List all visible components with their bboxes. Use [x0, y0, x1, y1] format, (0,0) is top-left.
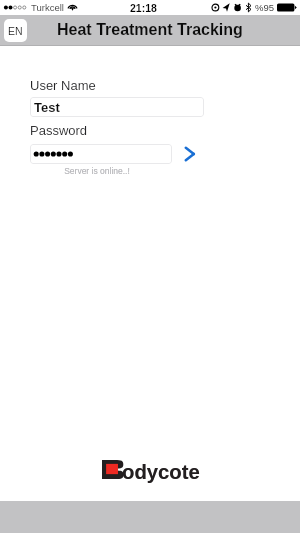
button[interactable]: Test: [30, 97, 204, 117]
staticText: Test: [34, 100, 60, 115]
staticText: odycote: [122, 461, 200, 484]
button[interactable]: Sign in: [177, 142, 201, 166]
staticText: Server is online..!: [30, 166, 164, 175]
staticText: Heat Treatment Tracking: [57, 21, 243, 39]
staticText: User Name: [30, 78, 96, 93]
staticText: Password: [30, 123, 88, 138]
staticText: odycote: [122, 461, 200, 484]
button[interactable]: EN: [4, 19, 27, 42]
staticText: %95: [255, 2, 275, 13]
staticText: EN: [8, 25, 23, 37]
staticText: 21:18: [130, 2, 157, 14]
staticText: Turkcell: [31, 2, 64, 13]
button[interactable]: [30, 144, 172, 164]
